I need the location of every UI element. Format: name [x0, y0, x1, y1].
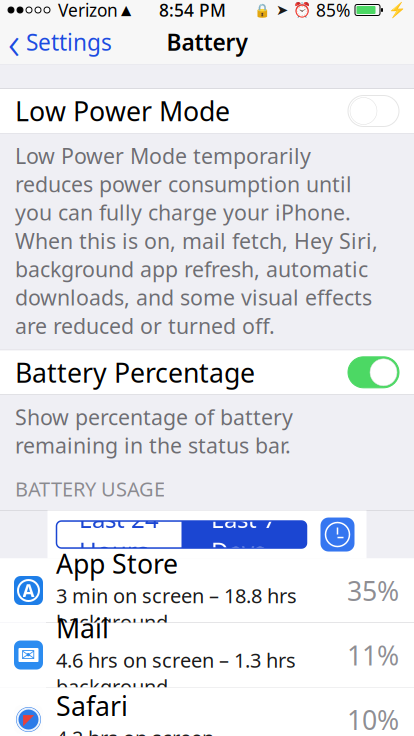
staticText: Last 24 Hours — [79, 503, 159, 566]
staticText: App Store — [56, 546, 178, 581]
button[interactable]: Battery Percentage — [0, 350, 414, 394]
staticText: ⚡ — [388, 2, 406, 18]
staticText: Verizon — [53, 0, 118, 21]
staticText: ‹ — [8, 12, 20, 72]
staticText: 4.2 hrs on screen — [56, 724, 214, 736]
staticText: Low Power Mode — [15, 93, 230, 129]
staticText: 🔒 — [254, 2, 271, 18]
staticText: 10% — [347, 702, 399, 736]
staticText: 35% — [347, 573, 399, 608]
staticText: Last 7 Days — [211, 503, 277, 566]
staticText: 4.6 hrs on screen – 1.3 hrs background — [56, 647, 296, 700]
button[interactable]: Last 7 Days — [181, 521, 306, 548]
staticText: Battery — [166, 27, 247, 57]
staticText: 11% — [347, 637, 399, 673]
staticText: ⏰ — [293, 2, 311, 18]
staticText: ◤ — [23, 711, 34, 728]
staticText: ➤ — [276, 2, 288, 18]
staticText: Low Power Mode temporarily reduces power… — [15, 141, 378, 340]
button[interactable]: A — [0, 558, 414, 623]
staticText: ▲ — [121, 2, 131, 17]
button[interactable]: Show usage time details — [317, 514, 357, 554]
staticText: ✉ — [21, 645, 36, 665]
staticText: Safari — [56, 688, 128, 723]
button[interactable]: Low Power Mode — [0, 89, 414, 133]
staticText: 8:54 PM — [159, 0, 226, 21]
staticText: 3 min on screen – 18.8 hrs background — [56, 582, 297, 635]
button[interactable]: ✉ — [0, 623, 414, 687]
button[interactable]: ◤ — [0, 687, 414, 736]
staticText: Show percentage of battery remaining in … — [15, 403, 293, 459]
staticText: Battery Percentage — [15, 355, 255, 390]
staticText: Settings — [26, 27, 112, 57]
button[interactable]: ‹ — [0, 8, 112, 76]
staticText: BATTERY USAGE — [15, 475, 165, 502]
staticText: Mail — [56, 610, 109, 646]
button[interactable]: Last 24 Hours — [56, 521, 181, 548]
staticText: A — [22, 579, 34, 602]
staticText: 85% — [316, 0, 350, 21]
